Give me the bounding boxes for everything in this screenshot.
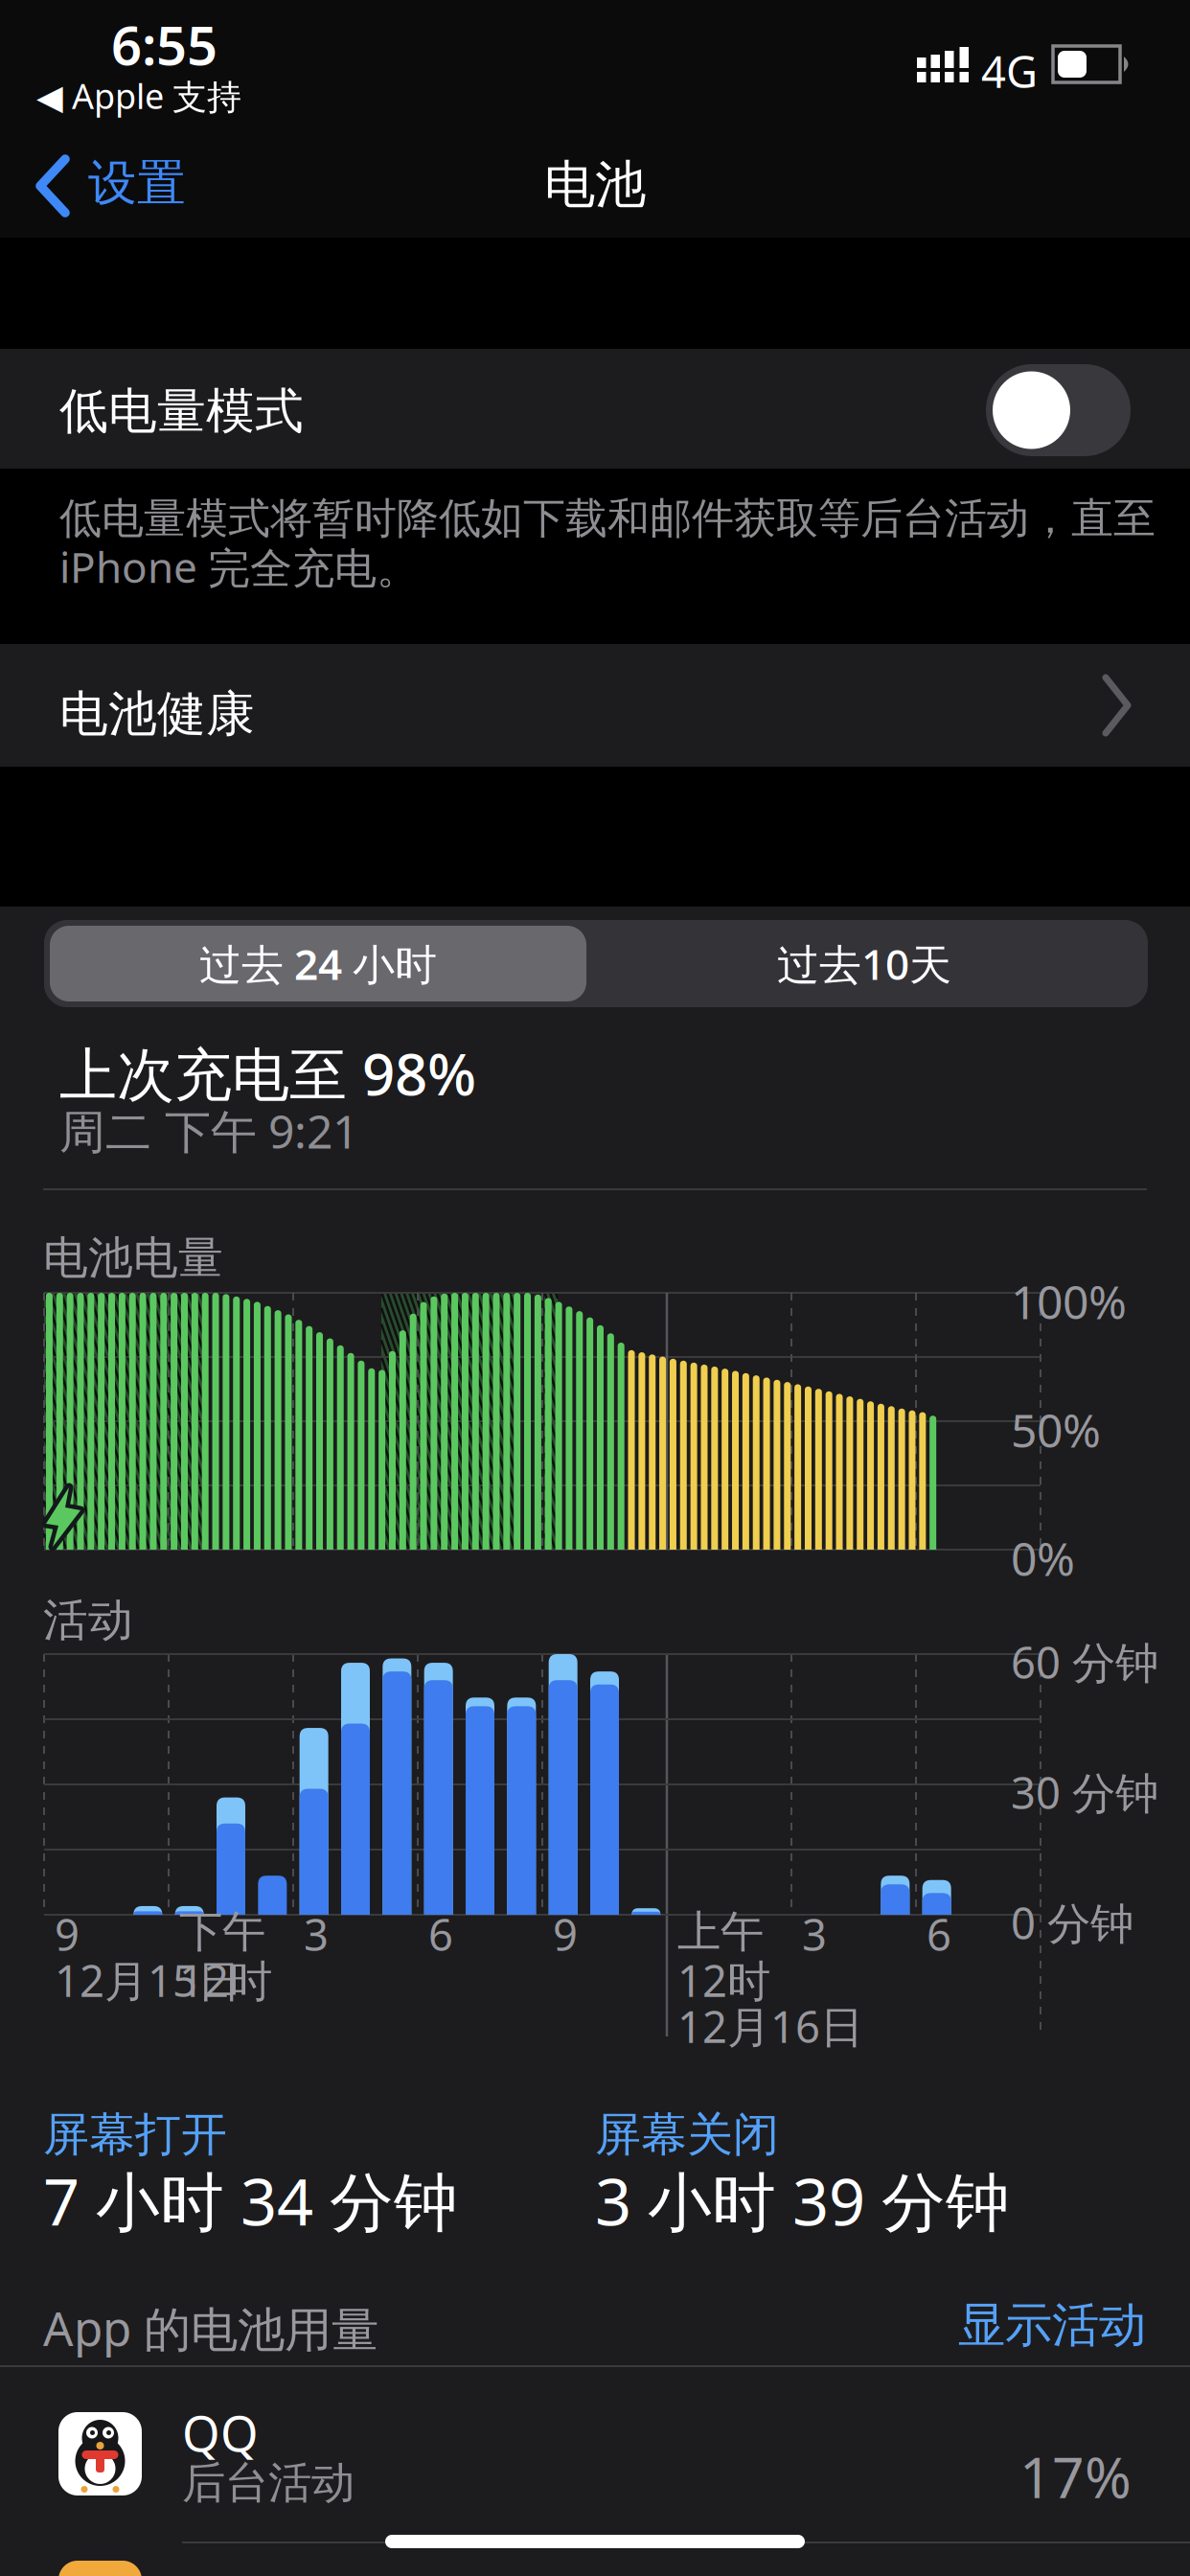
staticText: 12月15日 xyxy=(55,1951,240,2009)
button[interactable]: 设置 xyxy=(0,0,105,230)
staticText: 50% xyxy=(1011,1399,1101,1460)
staticText: 12时 xyxy=(677,1951,770,2009)
staticText: 4G xyxy=(981,42,1038,100)
staticText: 电池电量 xyxy=(43,1230,223,1285)
staticText: 屏幕打开 xyxy=(43,2106,227,2163)
staticText: 12月16日 xyxy=(677,1997,863,2055)
staticText: 3 xyxy=(304,1905,329,1963)
staticText: 100% xyxy=(1011,1271,1127,1332)
staticText: 上次充电至 98% xyxy=(59,1035,476,1111)
staticText: 12时 xyxy=(179,1951,272,2009)
staticText: 屏幕关闭 xyxy=(595,2106,779,2163)
staticText: 6:55 xyxy=(111,9,217,80)
staticText: 3 xyxy=(802,1905,827,1963)
staticText: 9 xyxy=(55,1905,80,1963)
staticText: 过去10天 xyxy=(777,936,951,992)
staticText: 下午 xyxy=(179,1905,265,1959)
staticText: 低电量模式将暂时降低如下载和邮件获取等后台活动，直至 xyxy=(59,493,1156,544)
staticText: QQ xyxy=(182,2401,259,2465)
button[interactable]: QQ xyxy=(0,2383,1190,2541)
staticText: ◀ Apple 支持 xyxy=(36,73,241,119)
staticText: 后台活动 xyxy=(182,2456,355,2510)
staticText: 上午 xyxy=(677,1905,764,1959)
staticText: 60 分钟 xyxy=(1011,1633,1158,1691)
staticText: 3 小时 39 分钟 xyxy=(595,2158,1010,2243)
staticText: iPhone 完全充电。 xyxy=(59,539,419,595)
button[interactable]: 低电量模式 xyxy=(986,364,1131,456)
staticText: 活动 xyxy=(43,1593,133,1648)
staticText: 9 xyxy=(553,1905,578,1963)
staticText: 电池健康 xyxy=(59,684,255,744)
button[interactable]: 电池健康 xyxy=(0,644,1190,767)
staticText: 低电量模式 xyxy=(59,381,304,441)
staticText: 6 xyxy=(927,1905,951,1963)
button[interactable]: 显示活动 xyxy=(954,2296,1146,2354)
staticText: 0 分钟 xyxy=(1011,1894,1133,1951)
staticText: 显示活动 xyxy=(958,2296,1146,2354)
staticText: 0% xyxy=(1011,1528,1075,1589)
staticText: 电池 xyxy=(544,153,646,216)
staticText: 30 分钟 xyxy=(1011,1763,1158,1821)
button[interactable]: 过去 24 小时 xyxy=(50,926,586,1001)
staticText: App 的电池用量 xyxy=(43,2296,378,2359)
button[interactable]: 返回 Apple 支持 xyxy=(0,0,205,46)
button[interactable]: 过去10天 xyxy=(596,926,1133,1001)
staticText: 设置 xyxy=(88,153,186,213)
staticText: 6 xyxy=(428,1905,453,1963)
staticText: 7 小时 34 分钟 xyxy=(43,2158,458,2243)
staticText: 过去 24 小时 xyxy=(199,936,437,992)
staticText: 17% xyxy=(1019,2439,1132,2514)
staticText: 周二 下午 9:21 xyxy=(59,1100,358,1161)
